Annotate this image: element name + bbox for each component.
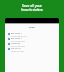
button[interactable]: BBC Radio 1 [5, 32, 59, 37]
staticText: favourite stations [21, 8, 43, 11]
button[interactable]: Capital FM [5, 42, 59, 47]
staticText: Kiss FM UK [11, 47, 21, 50]
staticText: Capital FM [11, 42, 21, 45]
staticText: Save all your [22, 3, 42, 7]
staticText: Contemporary hits [11, 35, 27, 37]
staticText: BBC Radio 1 [11, 32, 22, 35]
staticText: Top 40 hits radio [11, 45, 25, 47]
button[interactable]: Kiss FM UK [5, 47, 59, 52]
staticText: Radio [29, 26, 35, 29]
staticText: BBC Radio 2 [11, 37, 22, 40]
staticText: Dance and pop [11, 50, 24, 52]
staticText: 96.7 FM London [11, 40, 25, 42]
button[interactable]: BBC Radio 2 [5, 37, 59, 42]
